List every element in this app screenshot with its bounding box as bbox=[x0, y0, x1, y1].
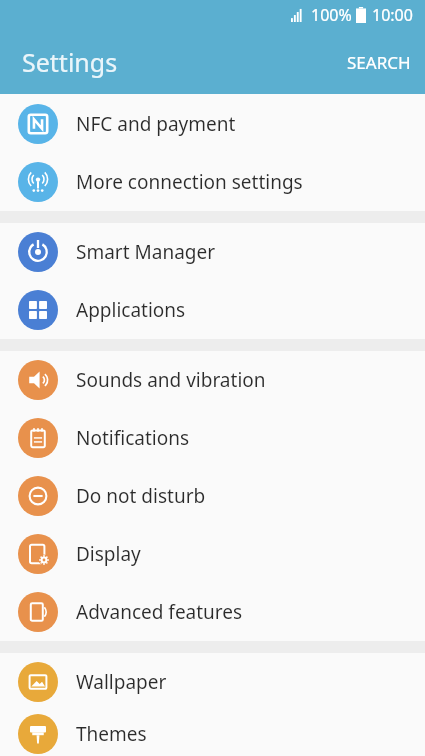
button[interactable]: Sounds and vibration bbox=[0, 351, 425, 409]
staticText: SEARCH bbox=[347, 51, 411, 74]
staticText: Applications bbox=[76, 297, 186, 323]
staticText: NFC and payment bbox=[76, 111, 236, 137]
staticText: Display bbox=[76, 541, 141, 567]
button[interactable]: Wallpaper bbox=[0, 653, 425, 711]
staticText: Wallpaper bbox=[76, 669, 167, 695]
button[interactable]: Smart Manager bbox=[0, 223, 425, 281]
staticText: Sounds and vibration bbox=[76, 367, 266, 393]
button[interactable]: Notifications bbox=[0, 409, 425, 467]
staticText: Themes bbox=[76, 721, 147, 747]
button[interactable]: SEARCH bbox=[331, 41, 425, 84]
button[interactable]: Advanced features bbox=[0, 583, 425, 641]
staticText: Settings bbox=[22, 45, 118, 79]
staticText: 100% bbox=[311, 4, 352, 26]
staticText: Do not disturb bbox=[76, 483, 206, 509]
button[interactable]: Settings bbox=[22, 45, 118, 79]
button[interactable]: NFC and payment bbox=[0, 95, 425, 153]
button[interactable]: Applications bbox=[0, 281, 425, 339]
button[interactable]: Themes bbox=[0, 711, 425, 756]
button[interactable]: Display bbox=[0, 525, 425, 583]
staticText: More connection settings bbox=[76, 169, 303, 195]
button[interactable]: Do not disturb bbox=[0, 467, 425, 525]
button[interactable]: More connection settings bbox=[0, 153, 425, 211]
staticText: Notifications bbox=[76, 425, 190, 451]
staticText: 10:00 bbox=[372, 4, 413, 26]
staticText: Smart Manager bbox=[76, 239, 216, 265]
staticText: Advanced features bbox=[76, 599, 243, 625]
